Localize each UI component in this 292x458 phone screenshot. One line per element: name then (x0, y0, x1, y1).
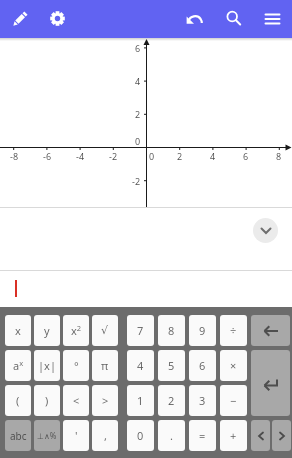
button[interactable]: ⊥∧% (34, 420, 60, 451)
staticText: = (199, 428, 206, 443)
button[interactable]: 5 (158, 350, 185, 381)
staticText: ⊥∧% (37, 430, 57, 441)
button[interactable]: abc (5, 420, 31, 451)
button[interactable]: |x| (34, 350, 60, 381)
staticText: ÷ (230, 323, 237, 338)
staticText: 0 (137, 428, 144, 443)
staticText: 4 (210, 150, 216, 162)
staticText: ' (75, 428, 78, 443)
staticText: > (102, 393, 109, 408)
staticText: 3 (199, 393, 206, 408)
staticText: -4 (76, 150, 85, 162)
button[interactable]: ax (5, 350, 31, 381)
staticText: 0 (135, 135, 141, 147)
staticText: ° (74, 358, 79, 373)
staticText: , (104, 428, 107, 443)
button[interactable] (272, 420, 291, 451)
button[interactable] (11, 10, 29, 28)
staticText: |x| (38, 358, 56, 373)
button[interactable] (49, 10, 66, 27)
staticText: 6 (135, 42, 141, 54)
staticText: √ (101, 324, 109, 337)
staticText: 4 (137, 358, 144, 373)
button[interactable]: , (92, 420, 118, 451)
staticText: -2 (109, 150, 118, 162)
staticText: -8 (10, 150, 19, 162)
button[interactable]: 9 (189, 315, 216, 346)
button[interactable]: 7 (127, 315, 154, 346)
button[interactable]: x2 (63, 315, 89, 346)
button[interactable] (265, 11, 281, 27)
staticText: 6 (243, 150, 249, 162)
staticText: 7 (137, 323, 144, 338)
staticText: < (73, 393, 80, 408)
staticText: -2 (132, 175, 141, 187)
button[interactable]: × (220, 350, 247, 381)
button[interactable]: + (220, 420, 247, 451)
staticText: 2 (168, 393, 175, 408)
button[interactable]: ' (63, 420, 89, 451)
button[interactable]: π (92, 350, 118, 381)
staticText: . (170, 428, 173, 443)
button[interactable] (226, 9, 243, 26)
button[interactable]: ÷ (220, 315, 247, 346)
staticText: − (230, 393, 237, 408)
staticText: 9 (199, 323, 206, 338)
button[interactable]: 1 (127, 385, 154, 416)
button[interactable]: 4 (127, 350, 154, 381)
button[interactable] (251, 420, 270, 451)
button[interactable]: 3 (189, 385, 216, 416)
staticText: 8 (276, 150, 282, 162)
button[interactable]: ° (63, 350, 89, 381)
staticText: 6 (199, 358, 206, 373)
button[interactable]: < (63, 385, 89, 416)
staticText: ) (45, 393, 49, 408)
button[interactable]: √ (92, 315, 118, 346)
staticText: 4 (135, 75, 141, 87)
staticText: ax (13, 358, 24, 373)
staticText: 0 (149, 150, 155, 162)
staticText: y (44, 323, 50, 338)
staticText: -6 (43, 150, 52, 162)
button[interactable] (253, 218, 278, 243)
staticText: 5 (168, 358, 175, 373)
button[interactable]: . (158, 420, 185, 451)
staticText: x2 (71, 323, 82, 338)
staticText: 2 (135, 108, 141, 120)
button[interactable] (186, 10, 203, 27)
button[interactable]: ) (34, 385, 60, 416)
staticText: 8 (168, 323, 175, 338)
staticText: + (230, 428, 237, 443)
staticText: π (101, 358, 109, 373)
button[interactable]: ( (5, 385, 31, 416)
button[interactable]: 6 (189, 350, 216, 381)
button[interactable]: 8 (158, 315, 185, 346)
staticText: × (230, 358, 237, 373)
button[interactable]: y (34, 315, 60, 346)
button[interactable]: 2 (158, 385, 185, 416)
button[interactable]: 0 (127, 420, 154, 451)
staticText: x (15, 323, 21, 338)
button[interactable]: > (92, 385, 118, 416)
button[interactable] (251, 350, 290, 416)
staticText: ( (16, 393, 20, 408)
button[interactable]: = (189, 420, 216, 451)
button[interactable] (251, 315, 290, 346)
staticText: 1 (137, 393, 144, 408)
button[interactable] (0, 271, 292, 307)
button[interactable]: x (5, 315, 31, 346)
button[interactable]: − (220, 385, 247, 416)
staticText: 2 (177, 150, 183, 162)
staticText: abc (10, 429, 27, 443)
